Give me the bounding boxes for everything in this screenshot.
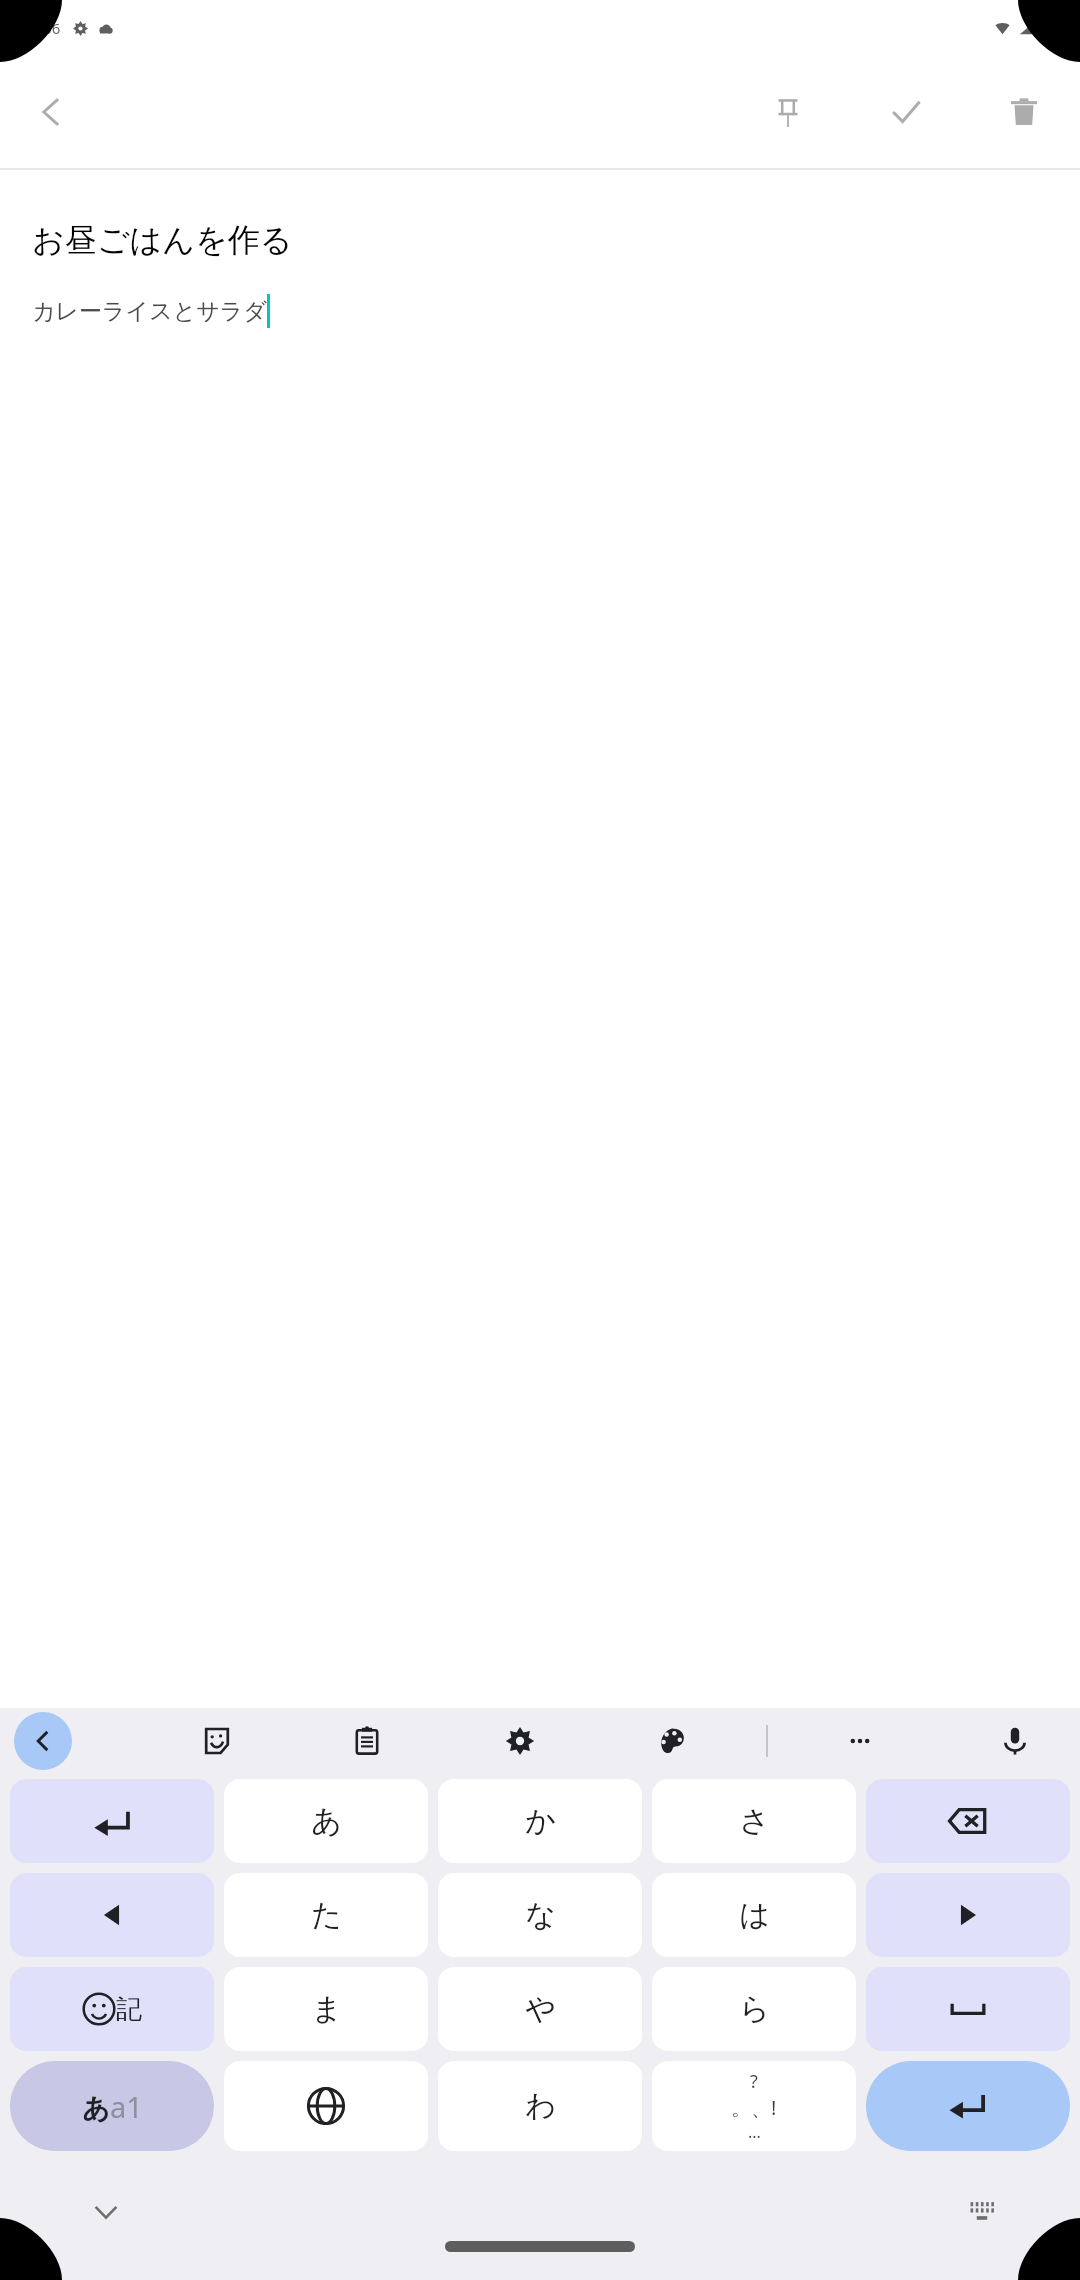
button[interactable]: Hide keyboard: [78, 2184, 134, 2240]
staticText: た: [311, 1896, 342, 1934]
button[interactable]: ま: [224, 1967, 428, 2051]
button[interactable]: Delete: [986, 74, 1062, 150]
button[interactable]: Themes: [641, 1710, 703, 1772]
button[interactable]: Change language: [224, 2061, 428, 2151]
button[interactable]: More options: [829, 1710, 891, 1772]
button[interactable]: Settings: [489, 1710, 551, 1772]
staticText: ら: [739, 1990, 770, 2028]
button[interactable]: Cursor left: [10, 1873, 214, 1957]
staticText: わ: [525, 2087, 556, 2125]
button[interactable]: お昼ごはんを作る: [32, 220, 293, 260]
button[interactable]: Done: [868, 74, 944, 150]
staticText: な: [525, 1896, 556, 1934]
button[interactable]: Switch keyboard: [954, 2184, 1010, 2240]
button[interactable]: Switch input mode: [10, 2061, 214, 2151]
button[interactable]: Punctuation: [652, 2061, 856, 2151]
button[interactable]: ら: [652, 1967, 856, 2051]
button[interactable]: Cursor right: [866, 1873, 1070, 1957]
staticText: 記: [116, 1993, 142, 2026]
staticText: a1: [110, 2087, 143, 2126]
button[interactable]: Space: [866, 1967, 1070, 2051]
staticText: カレーライスとサラダ: [32, 297, 267, 326]
button[interactable]: や: [438, 1967, 642, 2051]
button[interactable]: Backspace: [866, 1779, 1070, 1863]
button[interactable]: は: [652, 1873, 856, 1957]
button[interactable]: Clipboard: [336, 1710, 398, 1772]
staticText: ...: [748, 2121, 761, 2143]
button[interactable]: あ: [224, 1779, 428, 1863]
staticText: あ: [311, 1802, 342, 1840]
button[interactable]: か: [438, 1779, 642, 1863]
staticText: 15:06: [22, 18, 61, 38]
staticText: か: [525, 1802, 556, 1840]
button[interactable]: Collapse toolbar: [14, 1712, 72, 1770]
button[interactable]: さ: [652, 1779, 856, 1863]
button[interactable]: Stickers: [186, 1710, 248, 1772]
button[interactable]: Back: [20, 80, 84, 144]
button[interactable]: Enter: [866, 2061, 1070, 2151]
staticText: は: [739, 1896, 770, 1934]
button[interactable]: カレーライスとサラダ: [32, 294, 270, 328]
button[interactable]: Undo: [10, 1779, 214, 1863]
button[interactable]: わ: [438, 2061, 642, 2151]
button[interactable]: た: [224, 1873, 428, 1957]
button[interactable]: Voice input: [984, 1710, 1046, 1772]
staticText: や: [525, 1990, 556, 2028]
staticText: さ: [739, 1802, 770, 1840]
staticText: あ: [82, 2092, 110, 2126]
button[interactable]: な: [438, 1873, 642, 1957]
button[interactable]: Emoji and symbols: [10, 1967, 214, 2051]
button[interactable]: Pin: [750, 74, 826, 150]
staticText: ま: [311, 1990, 342, 2028]
staticText: 。、!: [731, 2094, 777, 2121]
staticText: ?: [750, 2069, 758, 2094]
